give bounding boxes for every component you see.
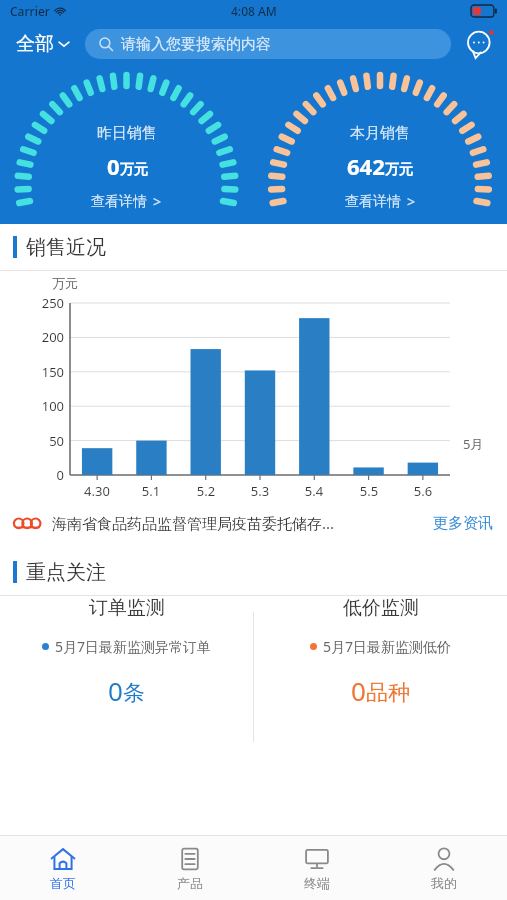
staticText: 5.4 (288, 482, 340, 500)
staticText: 0 (108, 673, 123, 708)
staticText: 5.2 (180, 482, 232, 500)
button[interactable]: 更多资讯 (433, 514, 493, 533)
staticText: 5.5 (343, 482, 395, 500)
staticText: 我的 (431, 875, 457, 891)
staticText: 首页 (50, 875, 76, 891)
button[interactable]: 订单监测 (0, 596, 253, 708)
staticText: 万元 (385, 161, 413, 179)
staticText: 低价监测 (343, 596, 419, 620)
staticText: 万元 (52, 275, 78, 291)
staticText: 5.3 (234, 482, 286, 500)
staticText: 条 (123, 679, 145, 707)
staticText: 5月 (463, 435, 484, 453)
staticText: 全部 (16, 32, 54, 56)
staticText: 4.30 (71, 482, 123, 500)
staticText: 0 (26, 466, 64, 484)
button[interactable]: 低价监测 (254, 596, 507, 708)
staticText: 万元 (120, 161, 148, 179)
staticText: 5月7日最新监测低价 (323, 637, 452, 656)
staticText: 请输入您要搜索的内容 (121, 35, 271, 54)
staticText: 5.6 (397, 482, 449, 500)
button[interactable]: 查看详情 (81, 189, 172, 214)
staticText: 5月7日最新监测异常订单 (55, 637, 212, 656)
staticText: 本月销售 (350, 124, 410, 143)
button[interactable]: 请输入您要搜索的内容 (85, 29, 451, 59)
staticText: > (153, 192, 162, 211)
staticText: 642 (347, 151, 385, 181)
staticText: 5.1 (125, 482, 177, 500)
staticText: 100 (26, 397, 64, 415)
button[interactable]: 首页 (0, 836, 126, 900)
staticText: 终端 (304, 875, 330, 891)
staticText: 销售近况 (26, 235, 106, 260)
button[interactable]: 我的 (380, 836, 507, 900)
staticText: Carrier (10, 3, 50, 19)
staticText: 昨日销售 (97, 124, 157, 143)
staticText: > (407, 192, 416, 211)
staticText: 重点关注 (26, 560, 106, 585)
staticText: 200 (26, 328, 64, 346)
button[interactable]: 产品 (126, 836, 253, 900)
staticText: 产品 (177, 875, 203, 891)
button[interactable]: 全部 (10, 28, 75, 60)
staticText: 0 (351, 673, 366, 708)
staticText: 查看详情 (345, 193, 401, 211)
button[interactable]: 查看详情 (335, 189, 426, 214)
staticText: 0 (107, 151, 120, 181)
staticText: 50 (26, 432, 64, 450)
staticText: 品种 (366, 679, 410, 707)
staticText: 查看详情 (91, 193, 147, 211)
button[interactable]: 终端 (253, 836, 380, 900)
button[interactable]: 海南省食品药品监督管理局疫苗委托储存... (0, 503, 507, 543)
staticText: 4:08 AM (231, 3, 277, 19)
staticText: 海南省食品药品监督管理局疫苗委托储存... (52, 513, 425, 533)
button[interactable]: Messages (463, 27, 497, 61)
staticText: 150 (26, 363, 64, 381)
staticText: 订单监测 (89, 596, 165, 620)
staticText: 250 (26, 294, 64, 312)
